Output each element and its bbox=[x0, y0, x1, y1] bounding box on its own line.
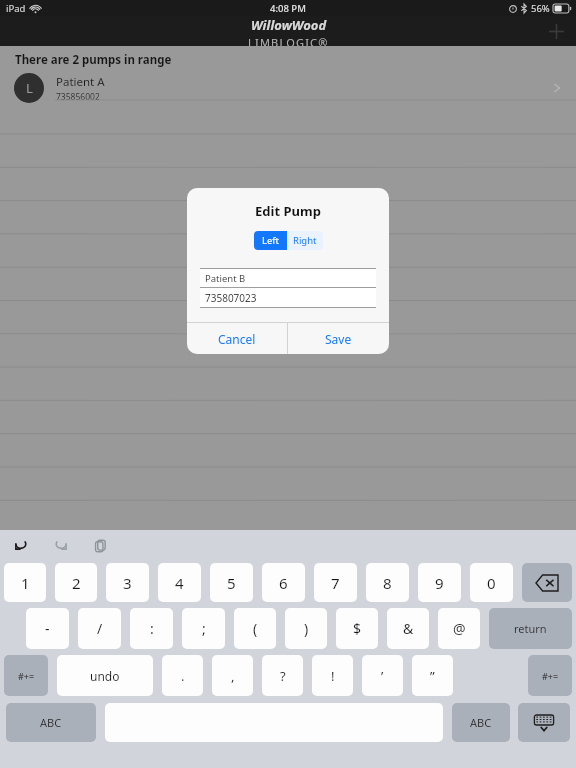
button[interactable]: 8 bbox=[366, 563, 409, 602]
staticText: 2 bbox=[72, 573, 81, 593]
button[interactable]: 6 bbox=[262, 563, 305, 602]
staticText: 735807023 bbox=[205, 291, 257, 305]
staticText: & bbox=[403, 619, 414, 638]
button[interactable]: Paste bbox=[90, 534, 112, 556]
staticText: #+= bbox=[18, 670, 35, 682]
button[interactable]: Hide keyboard bbox=[518, 703, 570, 742]
staticText: WillowWood bbox=[251, 16, 327, 34]
button[interactable]: 2 bbox=[55, 563, 97, 602]
button[interactable]: Redo bbox=[50, 534, 72, 556]
staticText: ’ bbox=[381, 667, 384, 685]
button[interactable]: ! bbox=[312, 655, 353, 696]
staticText: Edit Pump bbox=[187, 202, 389, 220]
staticText: undo bbox=[90, 668, 120, 684]
staticText: , bbox=[231, 667, 235, 685]
staticText: #+= bbox=[542, 670, 559, 682]
staticText: : bbox=[150, 619, 154, 638]
button[interactable]: & bbox=[387, 608, 429, 649]
button[interactable]: 735807023 bbox=[200, 288, 376, 307]
staticText: 4 bbox=[175, 573, 184, 593]
staticText: 4:08 PM bbox=[270, 2, 306, 15]
staticText: ( bbox=[253, 619, 258, 638]
staticText: 735856002 bbox=[56, 91, 100, 103]
button[interactable]: ( bbox=[234, 608, 276, 649]
button[interactable]: 5 bbox=[210, 563, 253, 602]
button[interactable]: Undo bbox=[10, 534, 32, 556]
staticText: 0 bbox=[487, 573, 496, 593]
button[interactable]: . bbox=[162, 655, 203, 696]
button[interactable]: Save bbox=[288, 323, 389, 354]
staticText: Save bbox=[325, 331, 352, 347]
button[interactable]: : bbox=[130, 608, 173, 649]
staticText: ABC bbox=[470, 715, 492, 730]
staticText: 3 bbox=[123, 573, 132, 593]
button[interactable]: #+= bbox=[528, 655, 572, 696]
staticText: ? bbox=[280, 667, 286, 685]
staticText: 5 bbox=[227, 573, 236, 593]
button[interactable]: - bbox=[26, 608, 69, 649]
button[interactable]: $ bbox=[336, 608, 378, 649]
staticText: ; bbox=[202, 619, 206, 638]
button[interactable]: @ bbox=[438, 608, 480, 649]
button[interactable]: return bbox=[489, 608, 572, 649]
staticText: Cancel bbox=[218, 331, 256, 347]
staticText: Right bbox=[293, 234, 317, 247]
staticText: ! bbox=[331, 667, 335, 685]
staticText: Left bbox=[262, 234, 280, 247]
staticText: 9 bbox=[435, 573, 444, 593]
staticText: There are 2 pumps in range bbox=[15, 52, 172, 68]
button[interactable]: ” bbox=[412, 655, 453, 696]
button[interactable]: ? bbox=[262, 655, 303, 696]
staticText: L bbox=[26, 79, 33, 97]
button[interactable]: Add pump bbox=[536, 16, 576, 46]
button[interactable]: 1 bbox=[4, 563, 46, 602]
staticText: iPad bbox=[6, 2, 26, 15]
staticText: LIMBLOGIC® bbox=[248, 35, 329, 46]
button[interactable]: , bbox=[212, 655, 253, 696]
button[interactable]: / bbox=[78, 608, 121, 649]
staticText: $ bbox=[353, 619, 362, 638]
button[interactable]: Cancel bbox=[187, 323, 287, 354]
button[interactable]: 4 bbox=[158, 563, 201, 602]
staticText: @ bbox=[453, 619, 466, 638]
button[interactable]: 9 bbox=[418, 563, 461, 602]
staticText: return bbox=[514, 621, 547, 636]
staticText: 8 bbox=[383, 573, 392, 593]
button[interactable]: Backspace bbox=[522, 563, 572, 602]
button[interactable]: 0 bbox=[470, 563, 513, 602]
staticText: Patient A bbox=[56, 74, 105, 90]
staticText: ) bbox=[304, 619, 309, 638]
staticText: 6 bbox=[279, 573, 288, 593]
staticText: . bbox=[181, 667, 185, 685]
staticText: ” bbox=[430, 667, 435, 685]
button[interactable]: ’ bbox=[362, 655, 403, 696]
button[interactable]: ) bbox=[285, 608, 327, 649]
button[interactable]: 3 bbox=[106, 563, 149, 602]
staticText: Patient B bbox=[205, 272, 246, 285]
button[interactable]: ABC bbox=[452, 703, 510, 742]
button[interactable]: Right bbox=[287, 231, 323, 250]
staticText: 56% bbox=[531, 2, 550, 15]
button[interactable]: ; bbox=[182, 608, 225, 649]
staticText: ABC bbox=[40, 715, 62, 730]
button[interactable]: #+= bbox=[4, 655, 48, 696]
staticText: 1 bbox=[21, 573, 30, 593]
button[interactable]: 7 bbox=[314, 563, 357, 602]
staticText: / bbox=[97, 619, 103, 638]
button[interactable]: Patient B bbox=[200, 269, 376, 287]
button[interactable]: ABC bbox=[6, 703, 96, 742]
staticText: 7 bbox=[331, 573, 340, 593]
button[interactable]: undo bbox=[57, 655, 153, 696]
staticText: - bbox=[45, 619, 50, 638]
button[interactable]: Left bbox=[254, 231, 287, 250]
button[interactable]: L bbox=[0, 68, 576, 108]
